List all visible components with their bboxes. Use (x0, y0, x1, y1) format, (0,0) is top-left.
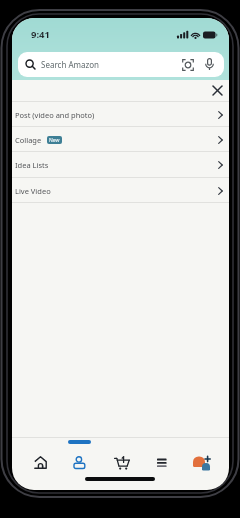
staticText: New (49, 137, 60, 144)
staticText: Search Amazon (41, 59, 100, 70)
button[interactable] (109, 450, 134, 475)
staticText: Collage (15, 135, 42, 145)
button[interactable]: Search Amazon (18, 52, 224, 77)
staticText: Post (video and photo) (15, 110, 95, 120)
staticText: Idea Lists (15, 160, 49, 170)
button[interactable] (67, 450, 92, 475)
staticText: Live Video (15, 186, 51, 196)
button[interactable] (28, 450, 53, 475)
staticText: 9:41 (31, 28, 50, 41)
button[interactable] (189, 450, 214, 475)
button[interactable]: Collage (12, 127, 229, 152)
button[interactable]: Idea Lists (12, 152, 229, 177)
button[interactable] (208, 81, 226, 99)
button[interactable]: Live Video (12, 178, 229, 203)
button[interactable]: Post (video and photo) (12, 102, 229, 127)
button[interactable] (149, 450, 174, 475)
